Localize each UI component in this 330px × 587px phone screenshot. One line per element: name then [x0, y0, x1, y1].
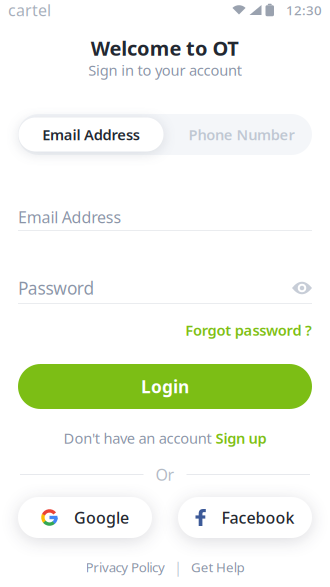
button[interactable]: Google: [18, 497, 152, 538]
staticText: 12:30: [286, 1, 322, 19]
staticText: Password: [18, 276, 95, 299]
staticText: Email Address: [18, 206, 122, 228]
button[interactable]: Email Address: [18, 117, 163, 151]
button[interactable]: Login: [18, 364, 312, 409]
button[interactable]: Forgot password ?: [185, 320, 312, 340]
staticText: Sign up: [216, 428, 266, 448]
staticText: Welcome to OT: [91, 35, 239, 61]
staticText: Forgot password ?: [185, 320, 312, 340]
staticText: Email Address: [42, 125, 140, 144]
staticText: Or: [155, 464, 174, 485]
staticText: Facebook: [221, 507, 294, 528]
staticText: Phone Number: [189, 125, 294, 144]
staticText: Sign in to your account: [88, 60, 242, 80]
staticText: |: [174, 557, 182, 577]
staticText: Get Help: [191, 558, 244, 576]
button[interactable]: Privacy Policy: [85, 558, 165, 576]
staticText: Login: [141, 375, 189, 398]
button[interactable]: [292, 281, 312, 294]
button[interactable]: Phone Number: [171, 117, 311, 151]
button[interactable]: Get Help: [191, 558, 244, 576]
staticText: cartel: [8, 0, 51, 21]
staticText: Privacy Policy: [85, 558, 165, 576]
button[interactable]: Facebook: [178, 497, 312, 538]
button[interactable]: Sign up: [216, 428, 266, 448]
staticText: Google: [74, 507, 129, 528]
staticText: Don't have an account: [64, 428, 212, 448]
